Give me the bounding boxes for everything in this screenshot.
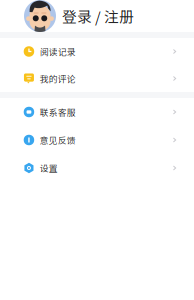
button[interactable]: 我的评论 bbox=[0, 65, 194, 92]
staticText: 登录 / 注册 bbox=[62, 5, 134, 27]
staticText: 意见反馈 bbox=[40, 134, 76, 146]
staticText: 联系客服 bbox=[40, 106, 76, 118]
staticText: 设置 bbox=[40, 162, 58, 174]
staticText: 阅读记录 bbox=[40, 45, 76, 58]
button[interactable]: 联系客服 bbox=[0, 98, 194, 126]
staticText: 我的评论 bbox=[40, 72, 76, 85]
button[interactable]: 阅读记录 bbox=[0, 38, 194, 65]
button[interactable]: 登录 / 注册 bbox=[0, 0, 194, 32]
button[interactable]: 设置 bbox=[0, 154, 194, 182]
button[interactable]: 意见反馈 bbox=[0, 126, 194, 154]
